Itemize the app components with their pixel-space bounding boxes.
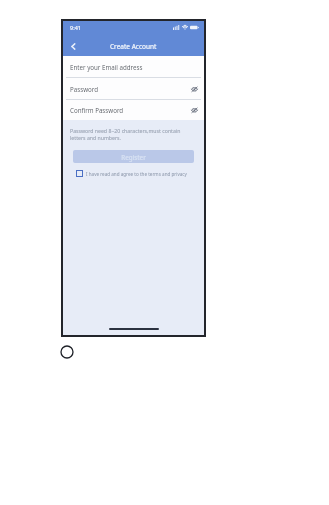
staticText: Create Account	[110, 42, 157, 51]
button[interactable]: Register	[73, 150, 194, 163]
button[interactable]: Show password	[189, 84, 199, 94]
staticText: Confirm Password	[70, 106, 124, 114]
staticText: 9:41	[70, 24, 81, 31]
button[interactable]: Show password	[189, 105, 199, 115]
button[interactable]: Confirm Password	[61, 100, 206, 120]
staticText: Password need 8~20 characters,must conta…	[70, 127, 194, 142]
staticText: Enter your Email address	[70, 63, 143, 71]
staticText: Register	[121, 153, 146, 161]
staticText: I have read and agree to the terms and p…	[86, 171, 187, 177]
button[interactable]: Enter your Email address	[61, 56, 206, 77]
button[interactable]: I have read and agree to the terms and p…	[76, 170, 187, 177]
button[interactable]: Password	[61, 78, 206, 99]
button[interactable]: Back	[66, 39, 80, 53]
staticText: Password	[70, 85, 98, 93]
